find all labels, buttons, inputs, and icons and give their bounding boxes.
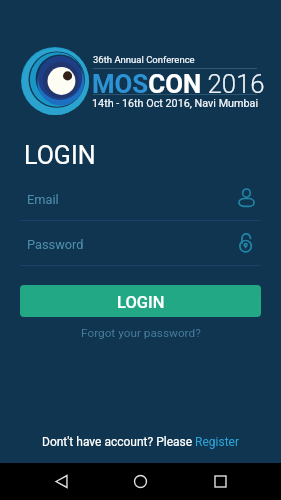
staticText: Password [27,237,84,252]
button[interactable]: Password [20,228,261,265]
staticText: 14th - 16th Oct 2016, Navi Mumbai [92,97,259,110]
button[interactable]: Home [122,463,159,500]
button[interactable]: LOGIN [20,285,261,317]
staticText: LOGIN [24,141,96,170]
button[interactable]: Email [20,183,261,220]
button[interactable]: Password [236,233,256,253]
staticText: LOGIN [117,293,165,312]
button[interactable]: Email address [237,188,256,207]
button[interactable]: Forgot your password? [77,322,205,344]
button[interactable]: Dont't have account? Please Register [40,433,242,451]
staticText: MOSCON 2016 [92,69,265,99]
staticText: Email [27,192,59,207]
button[interactable]: Recent apps [202,463,239,500]
button[interactable]: Back [43,463,80,500]
staticText: 36th Annual Conference [93,54,195,65]
